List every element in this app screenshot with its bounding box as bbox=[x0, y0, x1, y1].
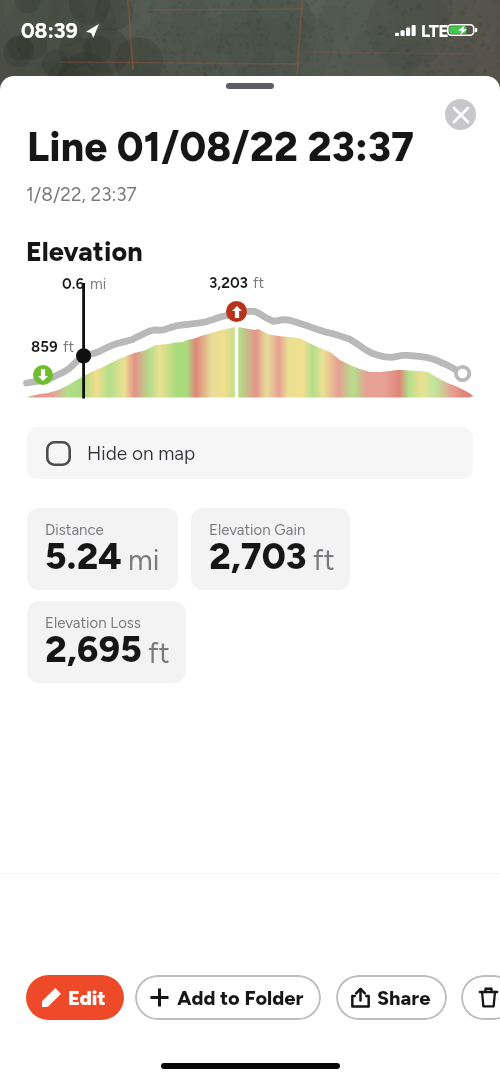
staticText: mi bbox=[128, 542, 160, 577]
staticText: 5.24 bbox=[45, 534, 122, 578]
staticText: 1/8/22, 23:37 bbox=[26, 183, 137, 206]
button[interactable]: Delete bbox=[461, 975, 500, 1020]
staticText: Elevation Gain bbox=[209, 521, 306, 539]
button[interactable]: Close bbox=[445, 99, 476, 130]
staticText: Edit bbox=[68, 986, 106, 1010]
button[interactable]: Share bbox=[336, 975, 447, 1020]
staticText: 2,703 bbox=[209, 534, 307, 578]
staticText: Line 01/08/22 23:37 bbox=[27, 122, 415, 171]
staticText: ft bbox=[148, 635, 170, 670]
staticText: LTE bbox=[421, 21, 449, 41]
button[interactable]: Edit bbox=[26, 975, 124, 1020]
staticText: 2,695 bbox=[45, 627, 142, 671]
button[interactable]: Add to Folder bbox=[135, 975, 321, 1020]
staticText: Share bbox=[377, 986, 431, 1010]
staticText: ft bbox=[313, 542, 335, 577]
staticText: 0.6 bbox=[62, 275, 85, 293]
staticText: ft bbox=[253, 274, 265, 292]
staticText: 859 bbox=[31, 338, 58, 356]
staticText: Elevation bbox=[26, 235, 143, 267]
staticText: 3,203 bbox=[209, 274, 248, 292]
staticText: 08:39 bbox=[21, 18, 78, 43]
staticText: mi bbox=[90, 275, 107, 293]
button[interactable]: Elevation Gain bbox=[191, 508, 350, 590]
button[interactable]: Hide on map bbox=[27, 427, 473, 479]
button[interactable]: Elevation Loss bbox=[27, 601, 186, 683]
staticText: Add to Folder bbox=[177, 986, 304, 1010]
staticText: Elevation Loss bbox=[45, 614, 141, 632]
staticText: Distance bbox=[45, 521, 104, 539]
staticText: Hide on map bbox=[87, 442, 196, 465]
button[interactable]: Distance bbox=[27, 508, 178, 590]
staticText: ft bbox=[63, 338, 75, 356]
